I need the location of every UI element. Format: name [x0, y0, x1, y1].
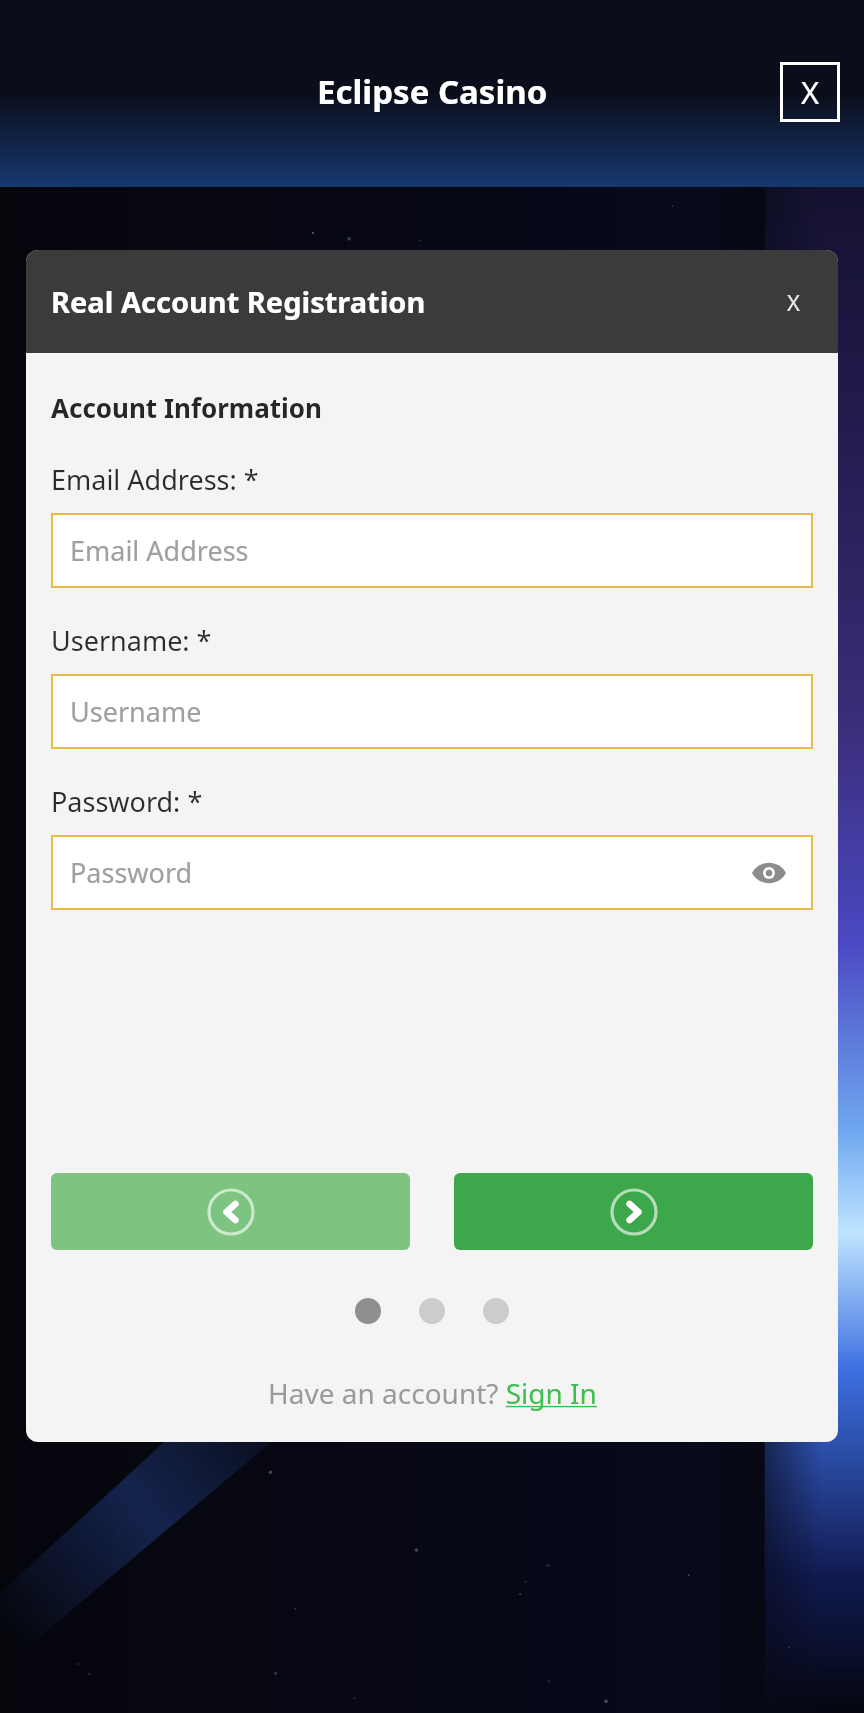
staticText: Email Address: * — [51, 461, 259, 498]
staticText: X — [787, 287, 800, 317]
button[interactable]: Close dialog — [766, 275, 820, 329]
staticText: Password: * — [51, 783, 203, 820]
button[interactable]: Previous step — [51, 1173, 410, 1250]
staticText: Have an account? Sign In — [268, 1374, 597, 1412]
button[interactable]: Email Address — [51, 513, 813, 588]
button[interactable] — [355, 1298, 381, 1324]
button[interactable]: Show password — [747, 851, 791, 895]
button[interactable]: Next step — [454, 1173, 813, 1250]
staticText: Eclipse Casino — [317, 69, 548, 114]
staticText: Account Information — [51, 390, 322, 425]
button[interactable] — [419, 1298, 445, 1324]
staticText: Username — [70, 693, 202, 730]
staticText: Password — [70, 854, 193, 891]
staticText: Email Address — [70, 532, 249, 569]
staticText: Username: * — [51, 622, 212, 659]
button[interactable] — [483, 1298, 509, 1324]
button[interactable]: Close — [780, 62, 840, 122]
staticText: Real Account Registration — [51, 282, 426, 321]
staticText: X — [801, 71, 820, 113]
button[interactable]: Password — [51, 835, 813, 910]
button[interactable]: Username — [51, 674, 813, 749]
button[interactable]: Have an account? Sign In — [51, 1374, 813, 1412]
